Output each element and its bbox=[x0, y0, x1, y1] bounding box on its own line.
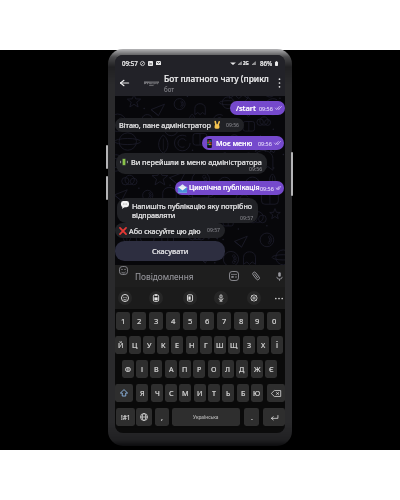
button[interactable]: Shift bbox=[115, 384, 133, 402]
button[interactable]: Ц bbox=[129, 336, 141, 354]
button[interactable]: 7 bbox=[217, 312, 231, 330]
staticText: Або скасуйте цю дію bbox=[129, 226, 201, 236]
button[interactable]: Voice input bbox=[214, 291, 228, 305]
staticText: Циклічна публікація bbox=[189, 183, 260, 193]
button[interactable]: Emoji bbox=[118, 291, 132, 305]
staticText: Й bbox=[118, 340, 124, 350]
button[interactable]: Р bbox=[193, 360, 205, 378]
button[interactable]: Б bbox=[237, 384, 249, 402]
button[interactable]: Change language bbox=[136, 408, 152, 426]
button[interactable]: Ч bbox=[151, 384, 163, 402]
button[interactable]: К bbox=[157, 336, 169, 354]
button[interactable]: Enter bbox=[263, 408, 285, 426]
staticText: В bbox=[154, 364, 159, 374]
button[interactable]: Українська bbox=[172, 408, 240, 426]
button[interactable]: Settings bbox=[247, 291, 261, 305]
button[interactable]: А bbox=[165, 360, 177, 378]
button[interactable]: 8 bbox=[234, 312, 248, 330]
button[interactable]: Н bbox=[186, 336, 198, 354]
staticText: 8 bbox=[239, 316, 244, 326]
button[interactable]: М bbox=[179, 384, 191, 402]
button[interactable]: Backspace bbox=[267, 384, 285, 402]
staticText: 7 bbox=[222, 316, 227, 326]
button[interactable]: Циклічна публікація bbox=[175, 181, 284, 195]
staticText: !#1 bbox=[121, 413, 131, 422]
button[interactable]: /start bbox=[230, 101, 285, 115]
button[interactable]: Щ bbox=[228, 336, 240, 354]
staticText: Повідомлення bbox=[135, 271, 194, 282]
staticText: Х bbox=[261, 340, 266, 350]
staticText: Українська bbox=[193, 414, 219, 421]
staticText: Т bbox=[212, 388, 216, 398]
staticText: Моє меню bbox=[216, 138, 253, 148]
button[interactable]: 2 bbox=[132, 312, 146, 330]
staticText: in bbox=[149, 62, 152, 66]
button[interactable]: Ф bbox=[122, 360, 134, 378]
staticText: бот bbox=[164, 85, 175, 93]
button[interactable]: 5 bbox=[183, 312, 197, 330]
button[interactable]: С bbox=[165, 384, 177, 402]
button[interactable]: Back bbox=[116, 70, 133, 96]
button[interactable]: Voice message bbox=[274, 265, 284, 287]
button[interactable]: Emoji bbox=[118, 265, 129, 276]
staticText: С bbox=[169, 388, 174, 398]
button[interactable]: 3 bbox=[149, 312, 163, 330]
staticText: Д bbox=[239, 364, 245, 374]
staticText: 2 bbox=[137, 316, 142, 326]
button[interactable]: 0 bbox=[267, 312, 281, 330]
staticText: Ц bbox=[132, 340, 138, 350]
button[interactable]: Ж bbox=[251, 360, 263, 378]
button[interactable]: Або скасуйте цю дію bbox=[115, 223, 225, 238]
button[interactable]: 9 bbox=[250, 312, 264, 330]
button[interactable]: Ю bbox=[251, 384, 263, 402]
staticText: Щ bbox=[230, 340, 238, 350]
button[interactable]: Ь bbox=[222, 384, 234, 402]
button[interactable]: П bbox=[179, 360, 191, 378]
button[interactable]: 4 bbox=[166, 312, 180, 330]
button[interactable]: Вітаю, пане адміністратор bbox=[115, 118, 244, 132]
button[interactable]: Ш bbox=[214, 336, 226, 354]
button[interactable]: !#1 bbox=[116, 408, 135, 426]
button[interactable]: Notes bbox=[183, 291, 197, 305]
staticText: Ш bbox=[216, 340, 224, 350]
button[interactable]: Keyboard bbox=[229, 265, 239, 287]
staticText: Г bbox=[204, 340, 208, 350]
staticText: 5 bbox=[188, 316, 193, 326]
staticText: 09:56 bbox=[249, 165, 263, 172]
button[interactable]: Скасувати bbox=[115, 241, 225, 261]
button[interactable]: Д bbox=[236, 360, 248, 378]
button[interactable]: Л bbox=[222, 360, 234, 378]
button[interactable]: Моє меню bbox=[202, 136, 284, 150]
button[interactable]: Напишіть публікацію яку потрібно відправ… bbox=[117, 198, 258, 223]
button[interactable]: З bbox=[243, 336, 255, 354]
button[interactable]: І bbox=[136, 360, 148, 378]
button[interactable]: Attach bbox=[251, 265, 261, 287]
button[interactable]: И bbox=[194, 384, 206, 402]
button[interactable]: Ї bbox=[271, 336, 283, 354]
button[interactable]: Г bbox=[200, 336, 212, 354]
button[interactable]: 1 bbox=[116, 312, 130, 330]
button[interactable]: Clipboard bbox=[149, 291, 163, 305]
button[interactable]: Й bbox=[115, 336, 127, 354]
button[interactable]: 6 bbox=[200, 312, 214, 330]
button[interactable]: Х bbox=[257, 336, 269, 354]
button[interactable]: , bbox=[155, 408, 169, 426]
button[interactable]: В bbox=[150, 360, 162, 378]
staticText: О bbox=[211, 364, 217, 374]
button[interactable]: Т bbox=[208, 384, 220, 402]
button[interactable]: Ви перейшли в меню адміністратора bbox=[116, 153, 267, 174]
staticText: 6 bbox=[205, 316, 210, 326]
staticText: Напишіть публікацію яку потрібно відправ… bbox=[132, 201, 258, 220]
button[interactable]: More options bbox=[273, 70, 285, 96]
button[interactable]: О bbox=[208, 360, 220, 378]
button[interactable]: Я bbox=[136, 384, 148, 402]
button[interactable]: Є bbox=[265, 360, 277, 378]
staticText: 9 bbox=[255, 316, 260, 326]
button[interactable]: More bbox=[272, 291, 285, 305]
button[interactable]: . bbox=[244, 408, 259, 426]
staticText: Є bbox=[269, 364, 274, 374]
staticText: П bbox=[182, 364, 188, 374]
button[interactable]: Е bbox=[171, 336, 183, 354]
button[interactable]: У bbox=[143, 336, 155, 354]
staticText: Ф bbox=[125, 364, 131, 374]
